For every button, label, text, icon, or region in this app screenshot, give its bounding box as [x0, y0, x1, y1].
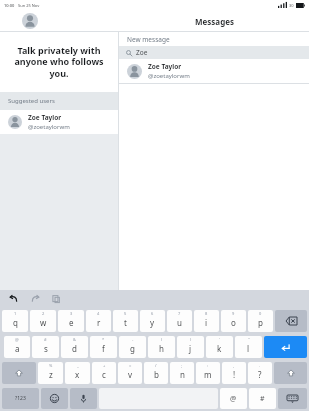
button[interactable]: Paste — [50, 293, 62, 305]
staticText: 10:00 — [4, 3, 15, 8]
staticText: r — [97, 317, 101, 328]
button[interactable]: Voice input — [70, 388, 97, 409]
staticText: . — [259, 363, 261, 368]
button[interactable]: 3 — [58, 310, 84, 332]
staticText: k — [217, 343, 222, 354]
staticText: t — [124, 317, 127, 328]
button[interactable]: Redo — [29, 293, 41, 305]
staticText: a — [15, 343, 20, 354]
staticText: ?123 — [15, 395, 26, 402]
button[interactable]: 7 — [167, 310, 192, 332]
staticText: q — [13, 317, 18, 328]
staticText: 2 — [42, 311, 45, 316]
button[interactable]: 6 — [140, 310, 165, 332]
staticText: g — [130, 343, 135, 354]
button[interactable]: ; — [170, 362, 194, 384]
staticText: / — [155, 363, 157, 368]
staticText: x — [75, 369, 80, 380]
staticText: 1 — [14, 311, 17, 316]
button[interactable]: @ — [4, 336, 30, 358]
staticText: * — [102, 337, 105, 342]
button[interactable]: 5 — [113, 310, 138, 332]
button[interactable]: = — [118, 362, 142, 384]
staticText: @zoetaylorwm — [148, 72, 190, 80]
staticText: m — [204, 369, 212, 380]
staticText: v — [128, 369, 133, 380]
button[interactable]: , — [222, 362, 246, 384]
staticText: Zoe — [136, 48, 148, 57]
button[interactable]: / — [144, 362, 168, 384]
button[interactable]: & — [61, 336, 88, 358]
staticText: 9 — [232, 311, 235, 316]
staticText: ; — [181, 363, 183, 368]
button[interactable]: 4 — [86, 310, 111, 332]
staticText: 3 — [70, 311, 73, 316]
button[interactable]: 8 — [194, 310, 219, 332]
button[interactable]: _ — [65, 362, 90, 384]
button[interactable]: Zoe Taylor — [0, 110, 118, 134]
staticText: 7 — [178, 311, 181, 316]
button[interactable]: ( — [148, 336, 175, 358]
staticText: Zoe Taylor — [148, 62, 182, 71]
button[interactable]: Hash — [249, 388, 276, 409]
staticText: l — [247, 343, 250, 354]
staticText: Suggested users — [8, 97, 55, 105]
button[interactable]: Undo — [8, 293, 20, 305]
button[interactable]: Zoe Taylor — [119, 59, 309, 83]
button[interactable]: # — [32, 336, 59, 358]
staticText: ( — [161, 337, 163, 342]
staticText: @ — [15, 337, 19, 342]
staticText: Sun 25 Nov — [18, 3, 40, 8]
staticText: e — [69, 317, 74, 328]
button[interactable]: 1 — [2, 310, 28, 332]
button[interactable]: Profile — [22, 13, 38, 29]
staticText: h — [159, 343, 164, 354]
staticText: 6 — [151, 311, 154, 316]
staticText: ' — [219, 337, 220, 342]
staticText: w — [40, 317, 47, 328]
button[interactable]: Enter — [264, 336, 307, 358]
staticText: i — [205, 317, 208, 328]
button[interactable]: Shift — [2, 362, 36, 384]
staticText: ? — [258, 369, 262, 380]
staticText: " — [248, 337, 250, 342]
button[interactable]: ' — [206, 336, 233, 358]
button[interactable]: 2 — [30, 310, 56, 332]
button[interactable]: 0 — [248, 310, 273, 332]
staticText: Zoe Taylor — [28, 113, 62, 122]
button[interactable]: : — [196, 362, 220, 384]
button[interactable]: . — [248, 362, 272, 384]
staticText: & — [73, 337, 76, 342]
button[interactable]: - — [119, 336, 146, 358]
staticText: ! — [233, 369, 236, 380]
button[interactable]: ) — [177, 336, 204, 358]
staticText: 30 — [289, 3, 294, 8]
staticText: d — [72, 343, 77, 354]
staticText: j — [189, 343, 192, 354]
staticText: - — [132, 337, 134, 342]
staticText: ) — [190, 337, 192, 342]
staticText: # — [44, 337, 47, 342]
button[interactable]: 9 — [221, 310, 246, 332]
button[interactable]: Emoji — [41, 388, 68, 409]
staticText: n — [180, 369, 185, 380]
button[interactable]: Zoe — [119, 46, 309, 59]
button[interactable]: Symbols — [2, 388, 39, 409]
staticText: 4 — [97, 311, 100, 316]
button[interactable]: Backspace — [275, 310, 307, 332]
staticText: Messages — [195, 16, 234, 27]
button[interactable]: Shift — [274, 362, 307, 384]
staticText: 0 — [259, 311, 262, 316]
staticText: @ — [230, 394, 237, 404]
staticText: c — [102, 369, 106, 380]
staticText: @zoetaylorwm — [28, 123, 70, 131]
button[interactable]: " — [235, 336, 262, 358]
staticText: + — [103, 363, 106, 368]
button[interactable]: + — [92, 362, 116, 384]
staticText: 5 — [124, 311, 127, 316]
button[interactable]: At sign — [220, 388, 247, 409]
button[interactable]: * — [90, 336, 117, 358]
button[interactable]: % — [38, 362, 63, 384]
button[interactable]: Hide keyboard — [278, 388, 307, 409]
